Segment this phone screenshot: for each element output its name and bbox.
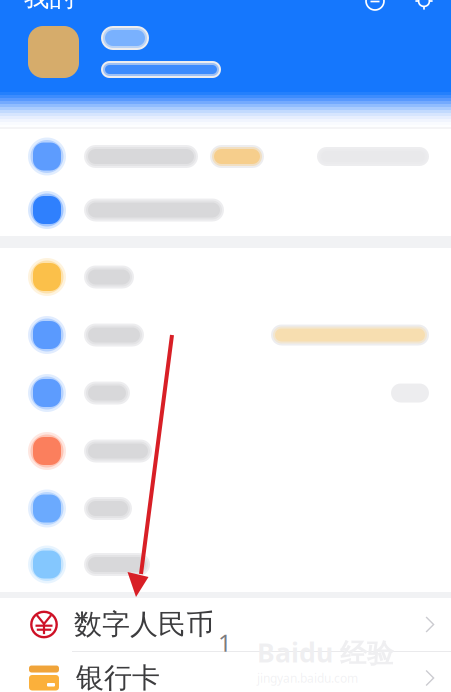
staticText: 我的 [24, 0, 74, 13]
button[interactable] [0, 248, 451, 306]
button[interactable] [0, 364, 451, 422]
staticText: jingyan.baidu.com [257, 670, 358, 686]
button[interactable]: 消息 [363, 0, 387, 12]
button[interactable] [0, 480, 451, 537]
button[interactable]: 设置 [412, 0, 436, 12]
button[interactable] [0, 422, 451, 480]
staticText: 1 [218, 626, 232, 658]
button[interactable] [0, 306, 451, 364]
staticText: Baidu 经验 [257, 634, 394, 670]
staticText: 数字人民币 [74, 607, 214, 642]
staticText: 银行卡 [76, 661, 160, 692]
button[interactable] [0, 129, 451, 184]
button[interactable]: 银行卡 [0, 652, 451, 692]
button[interactable] [0, 184, 451, 236]
button[interactable]: 数字人民币 [0, 598, 451, 651]
button[interactable] [0, 537, 451, 592]
